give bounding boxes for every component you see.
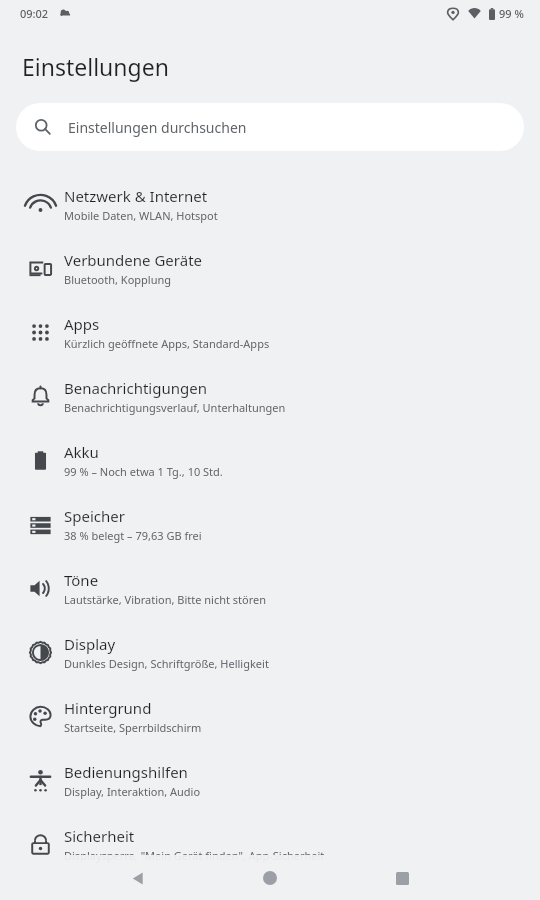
button[interactable]: Bedienungshilfen <box>0 748 540 812</box>
staticText: Netzwerk & Internet <box>64 186 208 206</box>
button[interactable]: Einstellungen durchsuchen <box>16 103 524 151</box>
staticText: Dunkles Design, Schriftgröße, Helligkeit <box>64 656 269 671</box>
button[interactable]: Benachrichtigungen <box>0 364 540 428</box>
staticText: Bedienungshilfen <box>64 762 188 782</box>
button[interactable]: Speicher <box>0 492 540 556</box>
staticText: 99 % – Noch etwa 1 Tg., 10 Std. <box>64 464 223 479</box>
staticText: Hintergrund <box>64 698 152 718</box>
button[interactable]: Home <box>252 860 288 896</box>
staticText: Startseite, Sperrbildschirm <box>64 720 202 735</box>
staticText: Apps <box>64 314 100 334</box>
staticText: Display, Interaktion, Audio <box>64 784 201 799</box>
button[interactable]: Back <box>120 860 156 896</box>
staticText: Benachrichtigungsverlauf, Unterhaltungen <box>64 400 286 415</box>
staticText: Mobile Daten, WLAN, Hotspot <box>64 208 218 223</box>
staticText: Kürzlich geöffnete Apps, Standard-Apps <box>64 336 270 351</box>
button[interactable]: Sicherheit <box>0 812 540 876</box>
staticText: Displaysperre, "Mein Gerät finden", App-… <box>64 848 325 863</box>
button[interactable]: Recents <box>384 860 420 896</box>
button[interactable]: Akku <box>0 428 540 492</box>
staticText: Einstellungen <box>22 51 169 82</box>
staticText: Töne <box>64 570 99 590</box>
button[interactable]: Display <box>0 620 540 684</box>
button[interactable]: Apps <box>0 300 540 364</box>
staticText: Akku <box>64 442 99 462</box>
button[interactable]: Verbundene Geräte <box>0 236 540 300</box>
staticText: Lautstärke, Vibration, Bitte nicht störe… <box>64 592 267 607</box>
button[interactable]: Hintergrund <box>0 684 540 748</box>
staticText: Display <box>64 634 116 654</box>
staticText: Bluetooth, Kopplung <box>64 272 172 287</box>
staticText: Sicherheit <box>64 826 135 846</box>
button[interactable]: Netzwerk & Internet <box>0 172 540 236</box>
staticText: Speicher <box>64 506 125 526</box>
staticText: Verbundene Geräte <box>64 250 203 270</box>
staticText: Benachrichtigungen <box>64 378 207 398</box>
staticText: Einstellungen durchsuchen <box>68 118 247 137</box>
button[interactable]: Töne <box>0 556 540 620</box>
staticText: 99 % <box>499 6 524 21</box>
staticText: 09:02 <box>20 6 49 21</box>
staticText: 38 % belegt – 79,63 GB frei <box>64 528 202 543</box>
